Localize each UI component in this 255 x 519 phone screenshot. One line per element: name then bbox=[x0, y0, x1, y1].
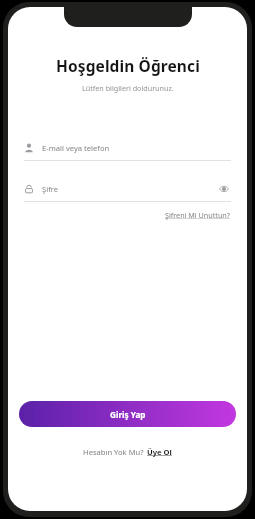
button[interactable]: Üye Ol bbox=[146, 445, 173, 459]
button[interactable]: Şifre bbox=[24, 180, 231, 202]
button[interactable]: Şifreni Mi Unuttun? bbox=[163, 208, 232, 222]
staticText: Giriş Yap bbox=[110, 409, 146, 420]
button[interactable]: E-mail veya telefon bbox=[24, 139, 231, 161]
staticText: Şifre bbox=[42, 184, 59, 194]
staticText: E-mail veya telefon bbox=[42, 143, 110, 153]
staticText: Hesabın Yok Mu? bbox=[83, 447, 146, 457]
button[interactable]: Şifreyi göster bbox=[217, 182, 231, 196]
staticText: Lütfen bilgileri doldurunuz. bbox=[82, 83, 174, 93]
staticText: Şifreni Mi Unuttun? bbox=[165, 210, 230, 220]
button[interactable]: Giriş Yap bbox=[19, 401, 236, 427]
staticText: Hoşgeldin Öğrenci bbox=[56, 55, 200, 76]
staticText: Üye Ol bbox=[147, 447, 172, 457]
